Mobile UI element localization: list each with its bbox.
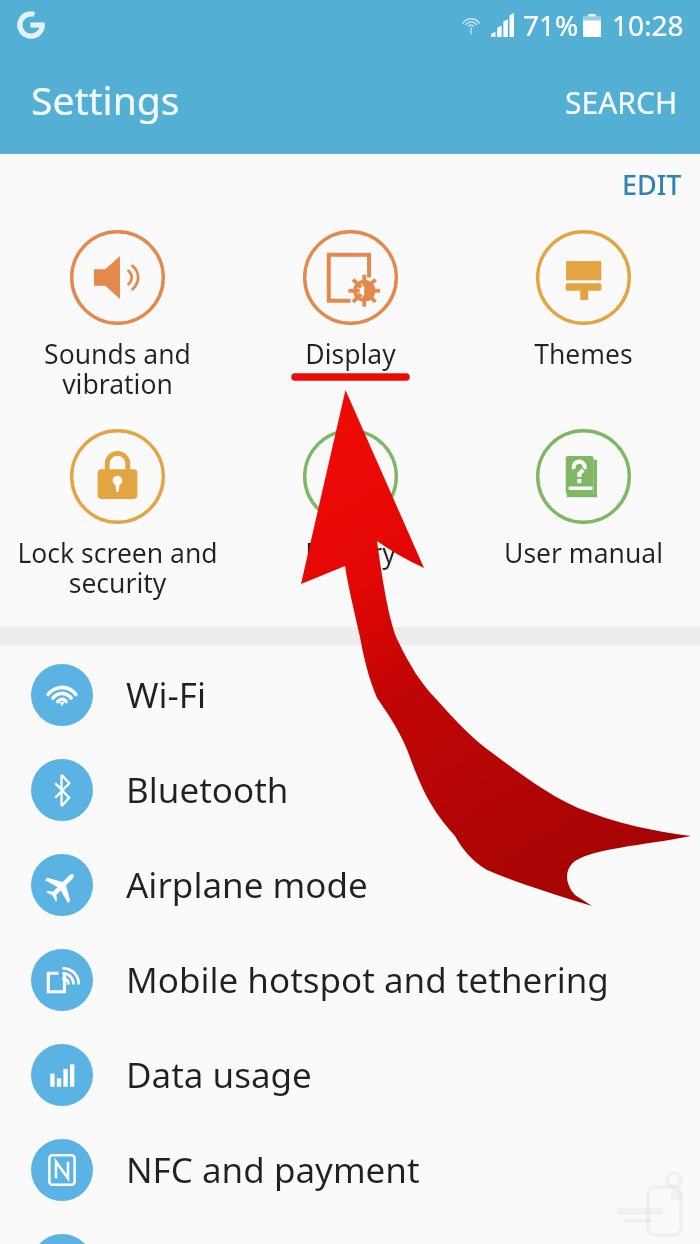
button[interactable]: Device connections — [0, 1217, 700, 1244]
button[interactable]: User manual — [467, 429, 700, 571]
staticText: Wi-Fi — [126, 671, 207, 719]
staticText: Bluetooth — [126, 766, 289, 814]
staticText: EDIT — [622, 166, 682, 203]
staticText: Lock screen and security — [17, 535, 218, 601]
button[interactable]: Bluetooth — [0, 742, 700, 837]
button[interactable]: Airplane mode — [0, 837, 700, 932]
button[interactable]: Battery — [234, 429, 467, 571]
button[interactable]: Mobile hotspot and tethering — [0, 932, 700, 1027]
staticText: NFC and payment — [126, 1146, 420, 1194]
button[interactable]: Lock screen and security — [1, 429, 234, 601]
button[interactable]: NFC and payment — [0, 1122, 700, 1217]
staticText: Airplane mode — [126, 861, 368, 909]
staticText: Battery — [305, 535, 396, 571]
staticText: Data usage — [126, 1051, 312, 1099]
staticText: SEARCH — [565, 82, 678, 123]
button[interactable]: Themes — [467, 230, 700, 372]
staticText: 10:28 — [612, 6, 684, 44]
staticText: Settings — [31, 73, 180, 126]
button[interactable]: SEARCH — [553, 72, 690, 133]
staticText: Mobile hotspot and tethering — [126, 956, 609, 1004]
staticText: 71% — [523, 6, 579, 44]
staticText: User manual — [504, 535, 663, 571]
staticText: Sounds and vibration — [44, 336, 191, 402]
other: Google — [16, 10, 46, 40]
staticText: Themes — [534, 336, 633, 372]
button[interactable]: Data usage — [0, 1027, 700, 1122]
button[interactable]: EDIT — [604, 158, 700, 211]
button[interactable]: Sounds and vibration — [1, 230, 234, 402]
button[interactable]: Display — [234, 230, 467, 372]
staticText: Display — [305, 336, 396, 372]
button[interactable]: Wi-Fi — [0, 647, 700, 742]
